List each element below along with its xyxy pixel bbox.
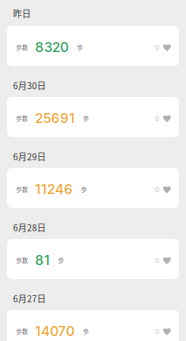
staticText: 0 bbox=[155, 327, 159, 336]
staticText: 6月27日 bbox=[13, 292, 46, 305]
staticText: 歩 bbox=[81, 185, 87, 193]
staticText: 0 bbox=[155, 185, 159, 194]
staticText: 歩数 bbox=[16, 43, 28, 51]
staticText: 歩数 bbox=[16, 256, 28, 264]
button[interactable]: 6月30日 25691歩 bbox=[7, 97, 179, 137]
staticText: 歩 bbox=[83, 327, 89, 335]
button[interactable]: 6月27日 14070歩 bbox=[7, 310, 179, 341]
button[interactable]: 6月28日 81歩 bbox=[7, 239, 179, 279]
staticText: 0 bbox=[155, 114, 159, 123]
staticText: 6月28日 bbox=[13, 221, 46, 234]
staticText: 14070 bbox=[35, 323, 75, 339]
staticText: 0 bbox=[155, 43, 159, 52]
staticText: 歩 bbox=[58, 256, 64, 264]
staticText: 81 bbox=[35, 252, 50, 268]
staticText: 6月29日 bbox=[13, 150, 46, 163]
staticText: 11246 bbox=[35, 181, 73, 197]
staticText: 歩 bbox=[77, 43, 83, 51]
staticText: 昨日 bbox=[13, 7, 31, 20]
staticText: 6月30日 bbox=[13, 79, 46, 92]
staticText: 歩数 bbox=[16, 114, 28, 122]
staticText: 0 bbox=[155, 256, 159, 265]
staticText: 25691 bbox=[35, 110, 75, 126]
button[interactable]: 昨日 8320歩 bbox=[7, 26, 179, 66]
staticText: 歩 bbox=[83, 114, 89, 122]
staticText: 歩数 bbox=[16, 185, 28, 193]
staticText: 8320 bbox=[35, 39, 69, 55]
button[interactable]: 6月29日 11246歩 bbox=[7, 168, 179, 208]
staticText: 歩数 bbox=[16, 327, 28, 335]
